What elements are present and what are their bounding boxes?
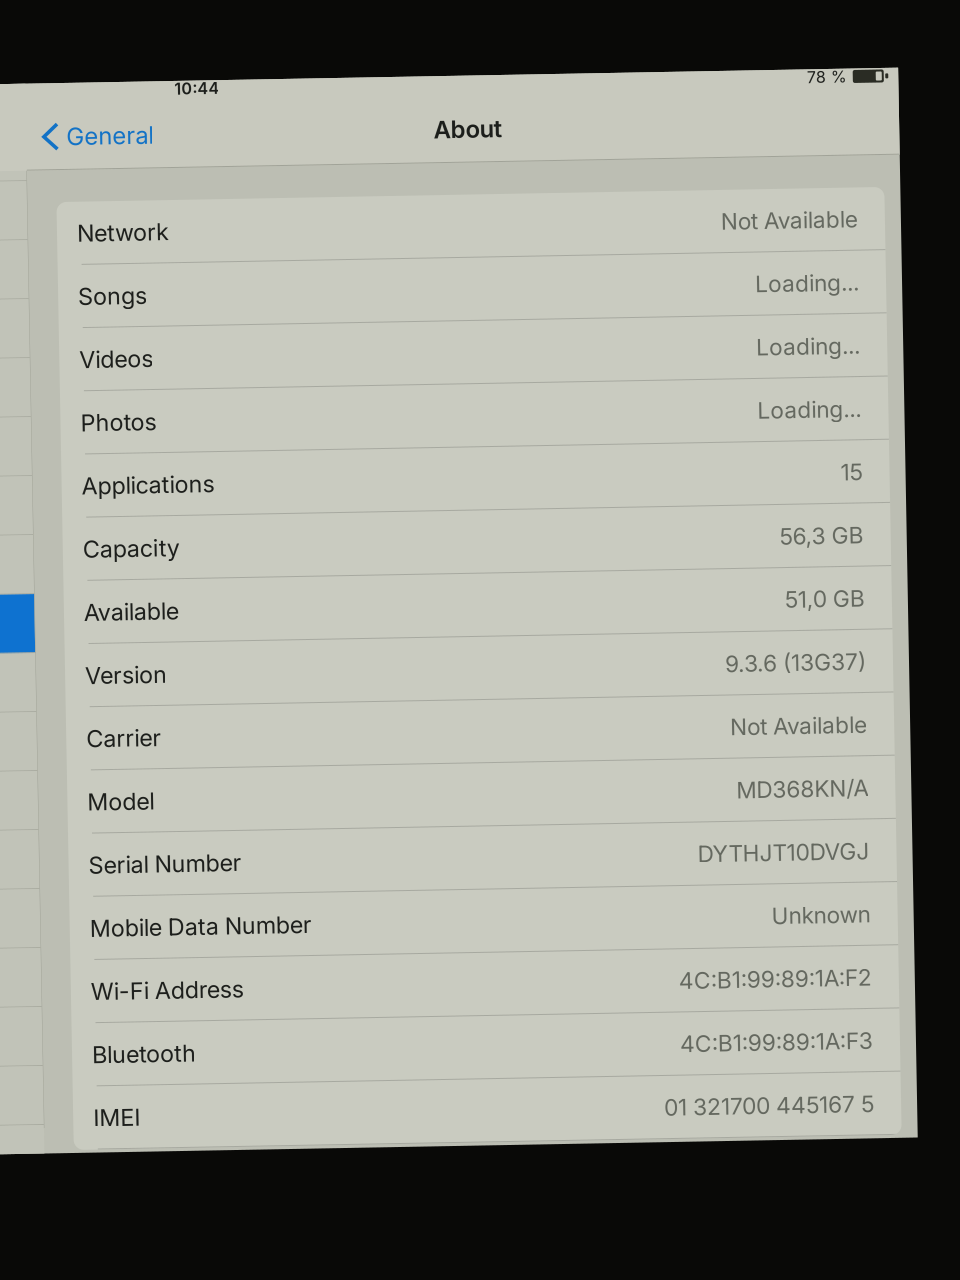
staticText: 9.3.6 (13G37) [724, 655, 865, 683]
button[interactable]: Settings section [0, 291, 34, 350]
button[interactable]: IMEI [64, 1080, 892, 1143]
button[interactable]: Settings section [0, 409, 34, 468]
button[interactable]: Carrier [64, 701, 892, 764]
button[interactable]: Videos [64, 321, 892, 385]
staticText: Unknown [766, 908, 865, 935]
button[interactable]: Settings section [0, 350, 34, 409]
staticText: DYTHJT10DVGJ [693, 845, 865, 872]
button[interactable]: Settings section [0, 232, 34, 291]
staticText: Version [84, 655, 166, 683]
staticText: Available [84, 592, 179, 620]
staticText: Mobile Data Number [84, 908, 306, 936]
button[interactable]: Settings section [0, 527, 34, 586]
button[interactable]: Settings section [0, 173, 34, 232]
button[interactable]: Network [64, 195, 892, 258]
button[interactable]: Settings section [0, 1117, 34, 1176]
staticText: Serial Number [84, 844, 237, 873]
button[interactable]: Settings section [0, 586, 34, 645]
button[interactable]: General [35, 104, 175, 155]
staticText: 56,3 GB [781, 529, 865, 556]
staticText: General [75, 115, 163, 144]
staticText: Carrier [84, 718, 159, 746]
button[interactable]: Model [64, 764, 892, 827]
button[interactable]: Mobile Data Number [64, 890, 892, 953]
staticText: Videos [84, 339, 158, 367]
button[interactable]: Settings section [0, 468, 34, 527]
staticText: Applications [84, 465, 217, 493]
staticText: 10:44 [184, 74, 229, 94]
staticText: 78 % [816, 74, 856, 94]
button[interactable]: Settings section [0, 645, 34, 704]
staticText: Bluetooth [84, 1034, 188, 1062]
button[interactable]: Serial Number [64, 827, 892, 890]
staticText: Not Available [728, 213, 865, 240]
staticText: 15 [843, 466, 865, 493]
staticText: 01 321700 445167 5 [655, 1098, 865, 1125]
staticText: IMEI [84, 1097, 131, 1125]
staticText: MD368KN/A [733, 782, 865, 809]
staticText: 4C:B1:99:89:1A:F3 [672, 1034, 865, 1062]
staticText: Wi-Fi Address [84, 971, 237, 999]
button[interactable]: Applications [64, 448, 892, 511]
button[interactable]: Capacity [64, 511, 892, 574]
button[interactable]: Bluetooth [64, 1017, 892, 1080]
staticText: About [442, 115, 510, 144]
staticText: 51,0 GB [785, 592, 865, 619]
staticText: Loading... [761, 402, 865, 430]
staticText: Capacity [84, 528, 181, 557]
staticText: Network [84, 212, 176, 241]
button[interactable]: Version [64, 637, 892, 701]
staticText: Songs [84, 276, 153, 304]
staticText: Model [84, 781, 151, 809]
staticText: Photos [84, 402, 160, 430]
staticText: 4C:B1:99:89:1A:F2 [672, 971, 865, 999]
staticText: Loading... [761, 276, 865, 303]
button[interactable]: Songs [64, 258, 892, 321]
staticText: Loading... [761, 339, 865, 367]
staticText: Not Available [728, 718, 865, 746]
button[interactable]: Wi-Fi Address [64, 953, 892, 1017]
button[interactable]: Available [64, 574, 892, 637]
button[interactable]: Photos [64, 385, 892, 448]
